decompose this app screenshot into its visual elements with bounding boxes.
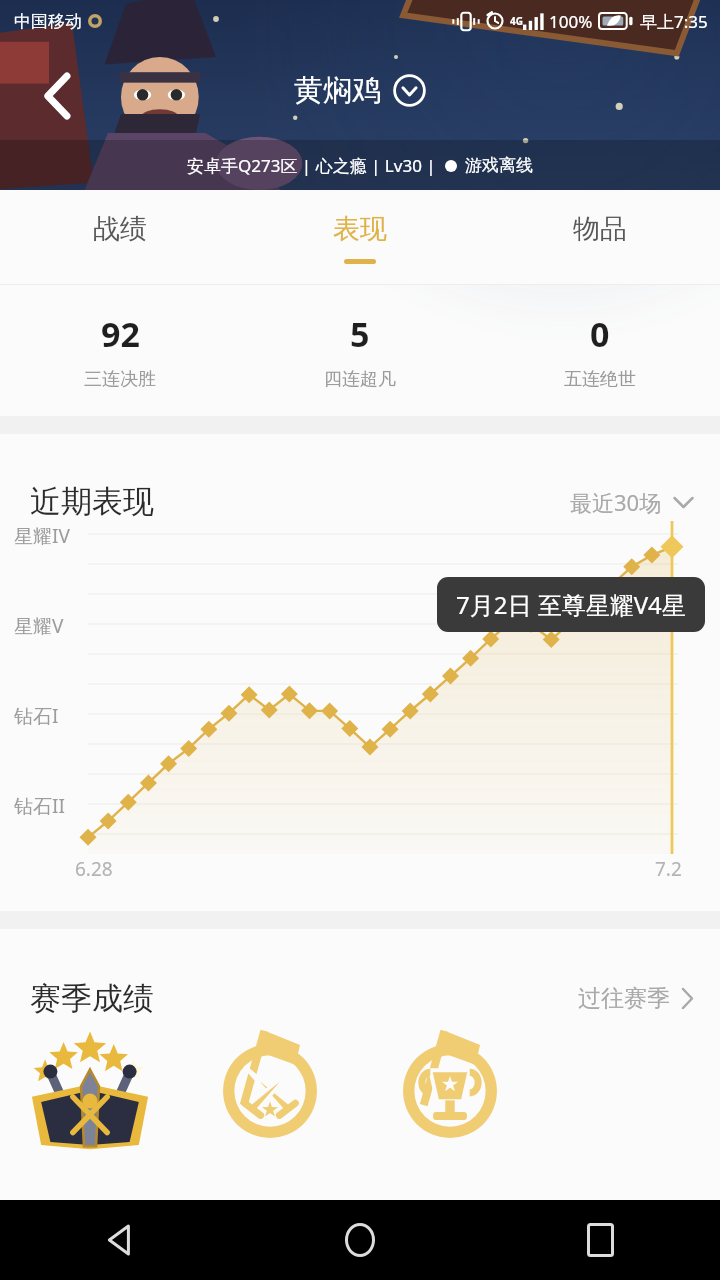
staticText: 三连决胜 bbox=[84, 368, 156, 391]
staticText: 4G bbox=[510, 14, 523, 28]
button[interactable]: Back bbox=[24, 62, 92, 130]
staticText: 赛季成绩 bbox=[30, 979, 154, 1018]
staticText: 中国移动 bbox=[14, 11, 82, 32]
button[interactable]: 表现 bbox=[240, 190, 480, 285]
staticText: 星耀V bbox=[14, 613, 64, 639]
button[interactable]: 5 bbox=[240, 285, 480, 416]
staticText: 过往赛季 bbox=[578, 984, 670, 1013]
button[interactable]: Back bbox=[0, 1200, 240, 1280]
staticText: 钻石II bbox=[14, 793, 65, 819]
staticText: 0 bbox=[590, 311, 610, 357]
button[interactable] bbox=[0, 1038, 180, 1143]
button[interactable] bbox=[360, 1038, 540, 1143]
button[interactable]: 黄焖鸡 bbox=[294, 72, 426, 109]
button[interactable]: Recents bbox=[480, 1200, 720, 1280]
staticText: 近期表现 bbox=[30, 482, 154, 521]
button[interactable]: Home bbox=[240, 1200, 480, 1280]
staticText: 最近30场 bbox=[570, 487, 662, 517]
button[interactable]: 最近30场 bbox=[570, 487, 694, 517]
button[interactable]: 物品 bbox=[480, 190, 720, 285]
staticText: 6.28 bbox=[75, 856, 113, 882]
staticText: 物品 bbox=[573, 212, 627, 246]
staticText: 表现 bbox=[333, 212, 387, 246]
staticText: 战绩 bbox=[93, 212, 147, 246]
staticText: 7.2 bbox=[655, 856, 682, 882]
button[interactable]: 7月2日 至尊星耀V4星 bbox=[437, 577, 705, 632]
staticText: 早上7:35 bbox=[640, 10, 708, 33]
button[interactable]: 92 bbox=[0, 285, 240, 416]
staticText: 五连绝世 bbox=[564, 368, 636, 391]
button[interactable]: 战绩 bbox=[0, 190, 240, 285]
button[interactable] bbox=[180, 1038, 360, 1143]
staticText: 黄焖鸡 bbox=[294, 72, 381, 109]
staticText: 四连超凡 bbox=[324, 368, 396, 391]
staticText: 游戏离线 bbox=[465, 155, 533, 176]
staticText: 星耀IV bbox=[14, 523, 70, 549]
staticText: 92 bbox=[101, 311, 140, 357]
staticText: 钻石I bbox=[14, 703, 59, 729]
staticText: 100% bbox=[549, 10, 593, 33]
staticText: 7月2日 至尊星耀V4星 bbox=[456, 588, 686, 621]
button[interactable]: 0 bbox=[480, 285, 720, 416]
button[interactable]: 过往赛季 bbox=[578, 984, 694, 1013]
staticText: 安卓手Q273区 | 心之瘾 | Lv30 | bbox=[187, 154, 436, 177]
staticText: 5 bbox=[350, 311, 370, 357]
